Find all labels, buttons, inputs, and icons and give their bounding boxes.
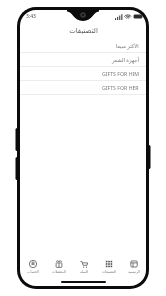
button[interactable]: الرئيسية — [121, 256, 146, 278]
button[interactable]: السلة — [71, 256, 96, 278]
staticText: التصنيفات — [102, 270, 116, 274]
staticText: التصنيفات — [69, 27, 98, 35]
staticText: الأكثر مبيعا — [116, 42, 139, 49]
staticText: المفضلات — [52, 270, 66, 274]
button[interactable]: أجهزة الشعر — [20, 53, 146, 66]
button[interactable]: الأكثر مبيعا — [20, 39, 146, 52]
staticText: السلة — [80, 270, 88, 274]
staticText: GIFTS FOR HER — [102, 84, 139, 91]
staticText: أجهزة الشعر — [112, 56, 139, 63]
button[interactable]: المفضلات — [46, 256, 71, 278]
button[interactable]: GIFTS FOR HIM — [20, 67, 146, 80]
staticText: الحساب — [27, 270, 39, 274]
button[interactable]: التصنيفات — [96, 256, 121, 278]
staticText: الرئيسية — [128, 270, 140, 274]
staticText: GIFTS FOR HIM — [102, 70, 139, 77]
staticText: 3:43 — [26, 13, 36, 20]
button[interactable]: الحساب — [20, 256, 46, 278]
button[interactable]: GIFTS FOR HER — [20, 81, 146, 94]
